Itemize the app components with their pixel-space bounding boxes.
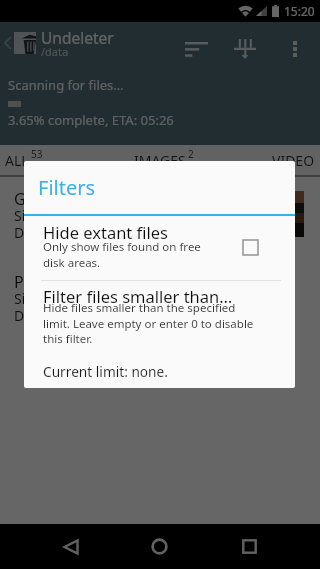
button[interactable]: Filters (225, 29, 265, 69)
staticText: Undeleter (41, 27, 114, 48)
staticText: Size: 1.4 MB (14, 289, 93, 308)
staticText: Scanning for files… (8, 76, 124, 94)
staticText: 3.65% complete, ETA: 05:26 (8, 111, 174, 129)
button[interactable]: Glass_0037.jpg (0, 184, 320, 268)
button[interactable]: ALL (5, 145, 43, 175)
button[interactable]: Photo_0112.jpg (0, 267, 320, 351)
staticText: ALL (5, 151, 29, 170)
staticText: Filter files smaller than… (43, 285, 233, 307)
staticText: Glass_0037.jpg (14, 188, 126, 210)
staticText: Hide extant files (43, 221, 168, 243)
button[interactable]: More options (275, 29, 315, 69)
staticText: Current limit: none. (43, 362, 168, 381)
button[interactable]: Navigate up (0, 22, 40, 64)
button[interactable]: Hide extant files (24, 216, 295, 278)
staticText: Size: 1.4 MB (14, 206, 93, 225)
staticText: 15:20 (284, 3, 315, 19)
staticText: Discovered: 12:34 (14, 223, 130, 242)
staticText: Photo_0112.jpg (14, 271, 131, 293)
button[interactable]: Recents (225, 524, 273, 569)
staticText: Filters (38, 174, 96, 201)
staticText: VIDEO (272, 151, 315, 170)
button[interactable]: Filter files smaller than… (24, 281, 295, 381)
staticText: 2 (188, 147, 194, 161)
staticText: Discovered: 12:34 (14, 306, 130, 325)
button[interactable]: Back (47, 524, 95, 569)
staticText: /data (41, 44, 69, 59)
button[interactable]: IMAGES (134, 145, 194, 175)
button[interactable]: VIDEO (272, 145, 315, 175)
staticText: Only show files found on free disk areas… (43, 239, 203, 270)
button[interactable]: Sort (176, 29, 216, 69)
staticText: Hide files smaller than the specified li… (43, 300, 255, 346)
staticText: IMAGES (134, 151, 186, 170)
button[interactable]: Home (135, 524, 183, 569)
staticText: 53 (31, 147, 43, 161)
